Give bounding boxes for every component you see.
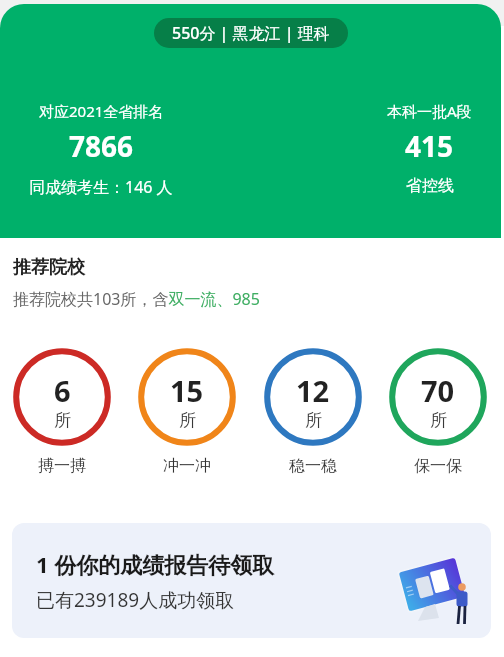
- staticText: 所: [430, 410, 447, 431]
- staticText: 同成绩考生：146 人: [29, 176, 173, 198]
- staticText: 对应2021全省排名: [39, 101, 164, 121]
- staticText: 冲一冲: [163, 456, 211, 476]
- staticText: 所: [54, 410, 71, 431]
- button[interactable]: 1 份你的成绩报告待领取: [12, 523, 491, 638]
- staticText: 1 份你的成绩报告待领取: [36, 549, 275, 579]
- staticText: 所: [179, 410, 196, 431]
- staticText: 15: [170, 371, 204, 410]
- staticText: 12: [296, 371, 330, 410]
- staticText: 保一保: [414, 456, 462, 476]
- button[interactable]: 70: [389, 348, 487, 446]
- staticText: 推荐院校: [13, 256, 85, 279]
- button[interactable]: 15: [138, 348, 236, 446]
- staticText: 7866: [69, 127, 134, 165]
- staticText: 搏一搏: [38, 456, 86, 476]
- button[interactable]: 550分 | 黑龙江 | 理科: [154, 18, 348, 48]
- staticText: 已有239189人成功领取: [36, 587, 235, 613]
- button[interactable]: 12: [264, 348, 362, 446]
- staticText: 6: [54, 371, 71, 410]
- staticText: 本科一批A段: [387, 101, 472, 121]
- staticText: 550分 | 黑龙江 | 理科: [172, 22, 330, 44]
- staticText: 稳一稳: [289, 456, 337, 476]
- staticText: 415: [405, 127, 454, 165]
- staticText: 所: [305, 410, 322, 431]
- staticText: 70: [421, 371, 455, 410]
- staticText: 省控线: [406, 176, 454, 196]
- staticText: 推荐院校共103所，含双一流、985: [13, 288, 260, 310]
- button[interactable]: 6: [13, 348, 111, 446]
